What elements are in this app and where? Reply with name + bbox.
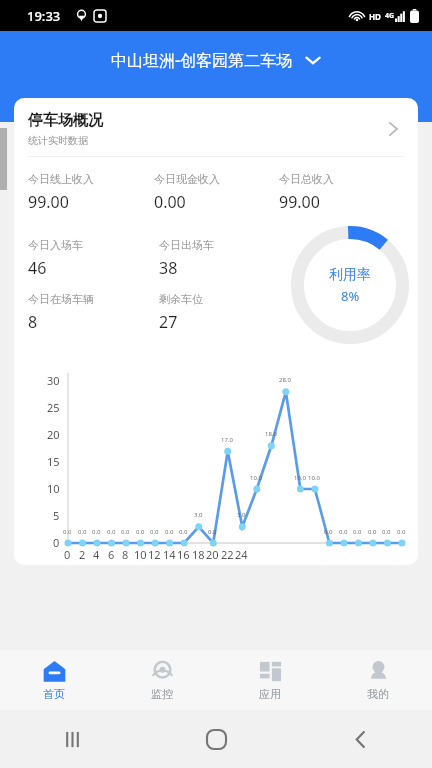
staticText: 0.0 bbox=[179, 528, 188, 536]
staticText: 10.0 bbox=[308, 474, 320, 482]
staticText: 16 bbox=[177, 547, 190, 562]
staticText: 20 bbox=[206, 547, 219, 562]
button[interactable]: 监控 bbox=[108, 650, 216, 710]
staticText: 0.0 bbox=[382, 528, 391, 536]
staticText: 0.0 bbox=[150, 528, 159, 536]
staticText: 14 bbox=[163, 547, 176, 562]
staticText: 0.0 bbox=[92, 528, 101, 536]
staticText: 今日现金收入 bbox=[154, 172, 220, 186]
staticText: 3.0 bbox=[194, 511, 203, 519]
staticText: 28.0 bbox=[279, 376, 291, 384]
staticText: 今日出场车 bbox=[159, 238, 214, 252]
button[interactable]: Recents bbox=[0, 710, 144, 768]
staticText: 0.0 bbox=[353, 528, 362, 536]
staticText: 今日总收入 bbox=[279, 172, 334, 186]
staticText: 我的 bbox=[367, 687, 389, 701]
staticText: 0.00 bbox=[154, 191, 186, 213]
staticText: 0.0 bbox=[165, 528, 174, 536]
staticText: 0.0 bbox=[397, 528, 406, 536]
staticText: 10 bbox=[47, 481, 60, 496]
staticText: 剩余车位 bbox=[159, 292, 203, 306]
staticText: 0.0 bbox=[78, 528, 87, 536]
staticText: 8 bbox=[28, 311, 38, 333]
staticText: 监控 bbox=[151, 687, 173, 701]
button[interactable]: 中山坦洲-创客园第二车场 bbox=[101, 43, 332, 77]
staticText: 今日在场车辆 bbox=[28, 292, 94, 306]
staticText: 0.0 bbox=[107, 528, 116, 536]
staticText: 17.0 bbox=[221, 436, 233, 444]
staticText: 0.0 bbox=[368, 528, 377, 536]
staticText: 12 bbox=[148, 547, 161, 562]
other: 查看详情 bbox=[382, 118, 404, 140]
staticText: 中山坦洲-创客园第二车场 bbox=[111, 49, 293, 71]
staticText: 10.0 bbox=[250, 474, 262, 482]
staticText: 19:33 bbox=[27, 7, 61, 25]
button[interactable]: 我的 bbox=[324, 650, 432, 710]
staticText: 24 bbox=[235, 547, 248, 562]
staticText: 应用 bbox=[259, 687, 281, 701]
staticText: 首页 bbox=[43, 687, 65, 701]
staticText: 8% bbox=[341, 287, 360, 305]
staticText: 2 bbox=[79, 547, 86, 562]
staticText: 0.0 bbox=[324, 528, 333, 536]
staticText: 30 bbox=[47, 373, 60, 388]
staticText: 18.0 bbox=[265, 430, 277, 438]
staticText: 99.00 bbox=[279, 191, 320, 213]
button[interactable]: 停车场概况 bbox=[14, 98, 418, 156]
staticText: 10.0 bbox=[294, 474, 306, 482]
staticText: 今日入场车 bbox=[28, 238, 83, 252]
staticText: 27 bbox=[159, 311, 178, 333]
staticText: 38 bbox=[159, 257, 178, 279]
staticText: 0 bbox=[53, 535, 60, 550]
staticText: 15 bbox=[47, 454, 60, 469]
staticText: 99.00 bbox=[28, 191, 69, 213]
staticText: 停车场概况 bbox=[28, 111, 103, 130]
staticText: 0.0 bbox=[136, 528, 145, 536]
staticText: 4 bbox=[93, 547, 100, 562]
staticText: 4G bbox=[385, 11, 395, 21]
button[interactable]: Home bbox=[144, 710, 288, 768]
staticText: 18 bbox=[192, 547, 205, 562]
staticText: HD bbox=[369, 11, 381, 22]
staticText: 统计实时数据 bbox=[28, 134, 88, 147]
staticText: 0 bbox=[64, 547, 71, 562]
staticText: 0.0 bbox=[339, 528, 348, 536]
staticText: 10 bbox=[134, 547, 147, 562]
staticText: 今日线上收入 bbox=[28, 172, 94, 186]
staticText: 0.0 bbox=[63, 528, 72, 536]
button[interactable]: 应用 bbox=[216, 650, 324, 710]
button[interactable]: 首页 bbox=[0, 650, 108, 710]
staticText: 20 bbox=[47, 427, 60, 442]
staticText: 22 bbox=[221, 547, 234, 562]
staticText: 0.0 bbox=[121, 528, 130, 536]
staticText: 46 bbox=[28, 257, 47, 279]
staticText: 3.0 bbox=[237, 511, 246, 519]
staticText: 利用率 bbox=[329, 266, 371, 284]
staticText: 8 bbox=[122, 547, 129, 562]
staticText: 5 bbox=[53, 508, 60, 523]
button[interactable]: Back bbox=[288, 710, 432, 768]
staticText: 6 bbox=[108, 547, 115, 562]
staticText: 0.0 bbox=[208, 528, 217, 536]
staticText: 25 bbox=[47, 400, 60, 415]
